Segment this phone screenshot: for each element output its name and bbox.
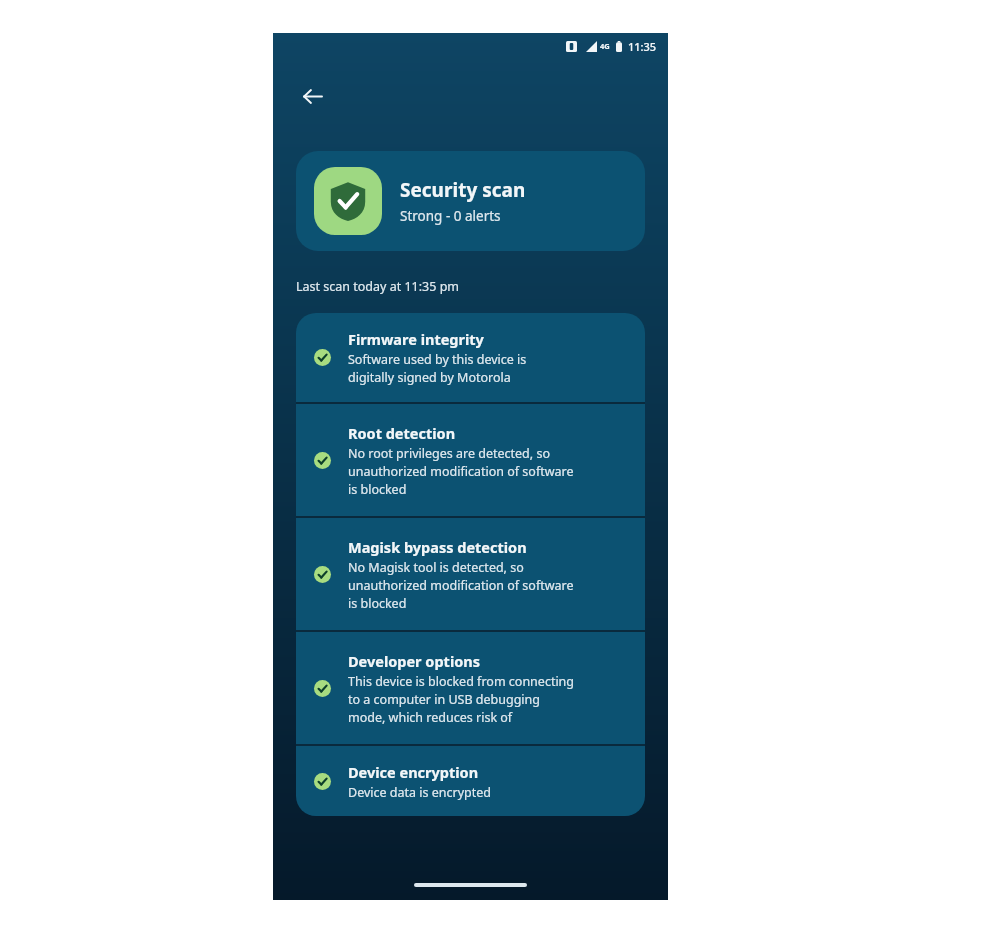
staticText: 4G	[600, 41, 610, 51]
staticText: This device is blocked from connecting t…	[348, 673, 575, 726]
button[interactable]: Developer options	[296, 632, 645, 744]
staticText: Device encryption	[348, 762, 479, 782]
staticText: Device data is encrypted	[348, 784, 491, 801]
staticText: Magisk bypass detection	[348, 537, 527, 557]
button[interactable]: Firmware integrity	[296, 313, 645, 402]
button[interactable]: Device encryption	[296, 746, 645, 816]
staticText: Developer options	[348, 651, 480, 671]
staticText: 11:35	[628, 39, 657, 54]
button[interactable]: Back	[295, 79, 329, 113]
staticText: Firmware integrity	[348, 329, 484, 349]
staticText: Last scan today at 11:35 pm	[296, 278, 460, 295]
button[interactable]: Root detection	[296, 404, 645, 516]
button[interactable]: Security scan	[296, 151, 645, 251]
staticText: Strong - 0 alerts	[400, 207, 501, 225]
button[interactable]: Magisk bypass detection	[296, 518, 645, 630]
staticText: Security scan	[400, 177, 526, 203]
staticText: No Magisk tool is detected, so unauthori…	[348, 559, 574, 612]
staticText: No root privileges are detected, so unau…	[348, 445, 574, 498]
staticText: Software used by this device is digitall…	[348, 351, 527, 386]
staticText: Root detection	[348, 423, 456, 443]
